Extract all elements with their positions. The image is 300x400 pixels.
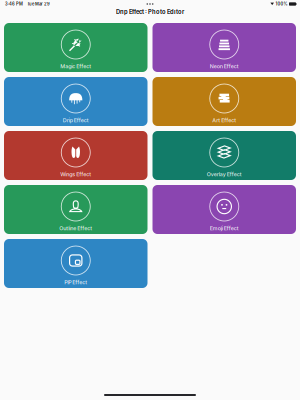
- button[interactable]: Multitasking controls: [141, 0, 159, 8]
- staticText: 100%: [275, 1, 287, 6]
- button[interactable]: Neon Effect: [152, 23, 296, 72]
- staticText: Magic Effect: [60, 63, 91, 69]
- button[interactable]: PIP Effect: [4, 239, 147, 288]
- button[interactable]: Magic Effect: [4, 23, 147, 72]
- button[interactable]: Wings Effect: [4, 131, 147, 180]
- staticText: Drip Effect: [63, 117, 89, 123]
- button[interactable]: Art Effect: [152, 77, 296, 126]
- staticText: Drip Effect : Photo Editor: [116, 8, 184, 15]
- button[interactable]: Outline Effect: [4, 185, 147, 234]
- staticText: Emoji Effect: [210, 225, 239, 231]
- button[interactable]: Overlay Effect: [152, 131, 296, 180]
- staticText: PIP Effect: [64, 279, 87, 285]
- staticText: Wings Effect: [60, 171, 91, 177]
- button[interactable]: Emoji Effect: [152, 185, 296, 234]
- button[interactable]: Drip Effect: [4, 77, 147, 126]
- staticText: Neon Effect: [210, 63, 239, 69]
- staticText: 3:46 PM: [5, 1, 23, 6]
- staticText: Art Effect: [212, 117, 236, 123]
- staticText: Outline Effect: [59, 225, 92, 231]
- staticText: Tue Mar 29: [27, 1, 50, 6]
- staticText: Overlay Effect: [207, 171, 242, 177]
